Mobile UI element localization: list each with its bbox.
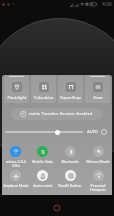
- staticText: 4:06: [102, 1, 112, 8]
- staticText: Auto rotate: [33, 183, 53, 188]
- staticText: Personal Hotspots: [90, 183, 106, 192]
- button[interactable]: SuperStop: [58, 75, 83, 103]
- button[interactable]: Auto rotate: [29, 170, 56, 188]
- button[interactable]: wlana-2.0.4 Diliu: [2, 146, 29, 168]
- staticText: NaviN Button: [58, 183, 82, 188]
- button[interactable]: Personal Hotspots: [84, 170, 112, 192]
- staticText: Airplane Mode: [3, 183, 29, 188]
- button[interactable]: Scan: [85, 75, 110, 103]
- button[interactable]: Silence Mode: [84, 146, 112, 164]
- staticText: Calculator: [34, 95, 54, 101]
- staticText: nubia Transfer: Receive disabled: [29, 111, 93, 117]
- staticText: wlana-2.0.4 Diliu: [6, 159, 26, 168]
- staticText: Mobile Data: [32, 159, 53, 164]
- button[interactable]: Mobile Data: [29, 146, 56, 164]
- staticText: Silence Mode: [86, 159, 110, 164]
- button[interactable]: nubia Transfer: Receive disabled: [11, 108, 103, 120]
- other: Auto brightness: [101, 129, 107, 135]
- staticText: SuperStop: [60, 95, 81, 101]
- button[interactable]: Flashlight: [4, 75, 29, 103]
- staticText: AUTO: [87, 129, 99, 135]
- button[interactable]: NaviN Button: [56, 170, 84, 188]
- button[interactable]: Calculator: [31, 75, 56, 103]
- staticText: Scan: [93, 95, 103, 101]
- other: Home: [54, 205, 60, 211]
- staticText: Bluetooth: [61, 159, 79, 164]
- staticText: Flashlight: [7, 95, 27, 101]
- button[interactable]: Airplane Mode: [2, 170, 29, 188]
- button[interactable]: Bluetooth: [56, 146, 84, 164]
